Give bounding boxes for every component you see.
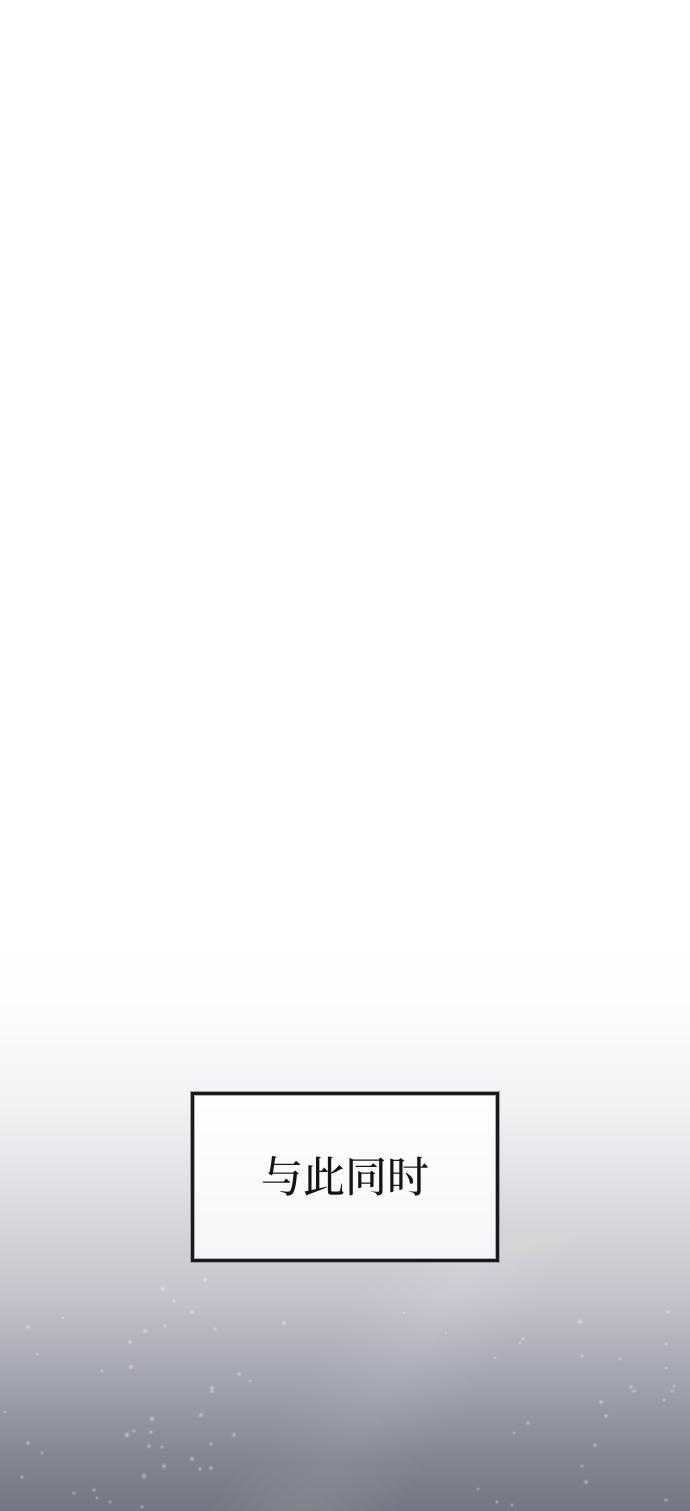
button[interactable]: Comic panel — 与此同时 xyxy=(0,0,690,1511)
staticText: 与此同时 xyxy=(261,1143,429,1204)
